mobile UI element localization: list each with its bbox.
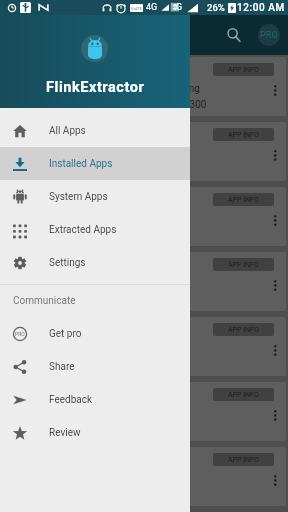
button[interactable]: All Apps — [0, 114, 190, 147]
button[interactable]: APP INFO — [2, 122, 286, 181]
staticText: APP INFO — [228, 66, 259, 74]
staticText: Samsung — [158, 83, 200, 95]
staticText: G — [176, 2, 183, 13]
button[interactable]: APP INFO — [2, 382, 286, 441]
staticText: All Apps — [49, 125, 86, 137]
button[interactable]: Extracted Apps — [0, 213, 190, 246]
staticText: System Apps — [49, 191, 108, 203]
button[interactable]: More options — [268, 341, 286, 359]
button[interactable]: APP INFO — [2, 447, 286, 506]
staticText: APP INFO — [228, 131, 259, 139]
staticText: PRO — [15, 331, 25, 337]
staticText: FlinkExtractor — [46, 79, 145, 96]
staticText: v 1.300 — [174, 99, 207, 111]
staticText: APP INFO — [228, 261, 259, 269]
staticText: Get pro — [49, 328, 82, 340]
button[interactable]: APP INFO — [2, 187, 286, 246]
button[interactable]: APP INFO — [213, 63, 274, 76]
staticText: PRO — [260, 30, 278, 41]
staticText: APP INFO — [228, 391, 259, 399]
staticText: Settings — [49, 257, 86, 269]
staticText: Feedback — [49, 394, 93, 406]
button[interactable]: More options — [268, 276, 286, 294]
staticText: Extracted Apps — [49, 224, 117, 236]
button[interactable]: APP INFO — [213, 323, 274, 336]
button[interactable]: APP INFO — [213, 453, 274, 466]
button[interactable]: APP INFO — [213, 388, 274, 401]
button[interactable]: APP INFO — [2, 252, 286, 311]
button[interactable]: APP INFO — [213, 258, 274, 271]
button[interactable]: PRO — [258, 24, 280, 46]
button[interactable]: APP INFO — [2, 57, 286, 116]
staticText: Communicate — [13, 295, 76, 307]
button[interactable]: APP INFO — [2, 317, 286, 376]
button[interactable]: APP INFO — [213, 193, 274, 206]
button[interactable]: Settings — [0, 246, 190, 279]
button[interactable]: More options — [268, 406, 286, 424]
staticText: 26% — [207, 2, 225, 13]
staticText: APP INFO — [228, 326, 259, 334]
staticText: Installed Apps — [49, 158, 113, 170]
button[interactable]: More options — [268, 211, 286, 229]
staticText: 4G — [146, 2, 158, 13]
button[interactable]: More options — [268, 146, 286, 164]
button[interactable]: Installed Apps — [0, 147, 190, 180]
button[interactable]: Review — [0, 416, 190, 449]
staticText: Review — [49, 427, 81, 439]
staticText: ↕ — [170, 3, 180, 12]
button[interactable]: APP INFO — [213, 128, 274, 141]
staticText: VoLTE — [131, 6, 143, 11]
staticText: 12:00 AM — [237, 2, 285, 14]
staticText: Share — [49, 361, 75, 373]
button[interactable]: Feedback — [0, 383, 190, 416]
button[interactable]: More options — [268, 81, 286, 99]
button[interactable]: Search — [222, 23, 246, 47]
button[interactable]: Share — [0, 350, 190, 383]
button[interactable]: More options — [268, 471, 286, 489]
staticText: APP INFO — [228, 196, 259, 204]
button[interactable]: System Apps — [0, 180, 190, 213]
button[interactable]: PRO — [0, 317, 190, 350]
staticText: APP INFO — [228, 456, 259, 464]
